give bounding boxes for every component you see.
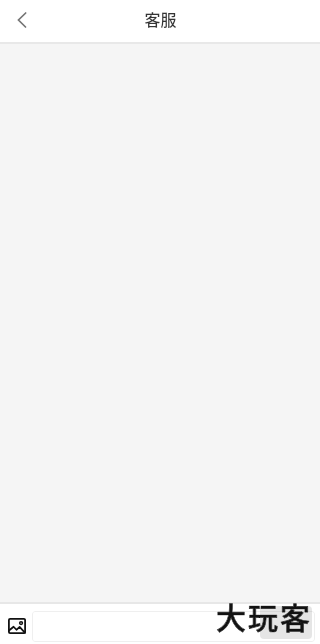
staticText: 客服	[144, 7, 177, 30]
staticText: 大玩客	[216, 594, 312, 637]
button[interactable]	[32, 611, 315, 642]
button[interactable]: Back	[0, 1, 42, 42]
button[interactable]: Send image	[0, 604, 32, 644]
staticText: 大玩客	[216, 594, 312, 637]
